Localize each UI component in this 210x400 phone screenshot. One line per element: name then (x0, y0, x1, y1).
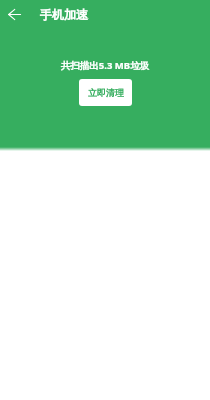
staticText: 立即清理 (88, 87, 124, 98)
staticText: 共扫描出5.3 MB垃圾 (0, 59, 210, 72)
button[interactable]: 立即清理 (79, 79, 132, 106)
staticText: 手机加速 (40, 7, 88, 22)
button[interactable]: Back (0, 0, 28, 28)
